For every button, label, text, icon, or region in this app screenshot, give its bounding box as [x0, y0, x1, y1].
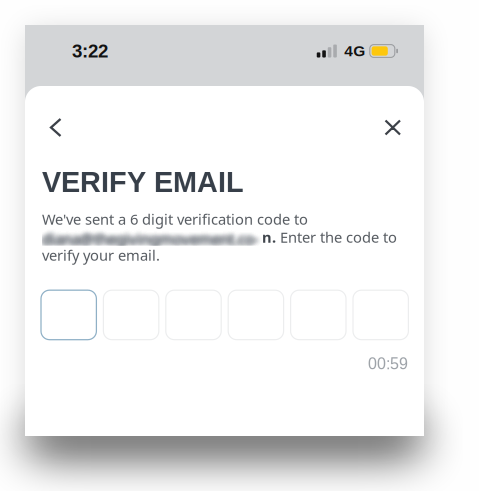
button[interactable]	[353, 290, 408, 340]
staticText: verify your email.	[42, 245, 160, 265]
button[interactable]	[291, 290, 346, 340]
staticText: VERIFY EMAIL	[42, 166, 244, 198]
button[interactable]: Back	[25, 86, 78, 148]
staticText: 3:22	[72, 41, 108, 61]
staticText: n.	[262, 227, 276, 247]
staticText: 00:59	[368, 355, 408, 373]
button[interactable]	[103, 290, 159, 340]
button[interactable]	[228, 290, 284, 340]
staticText: We've sent a 6 digit verification code t…	[42, 209, 308, 229]
button[interactable]	[41, 290, 96, 340]
staticText: Enter the code to	[276, 227, 397, 247]
button[interactable]: Close	[367, 86, 424, 147]
button[interactable]	[166, 290, 221, 340]
staticText: 4G	[344, 42, 365, 60]
